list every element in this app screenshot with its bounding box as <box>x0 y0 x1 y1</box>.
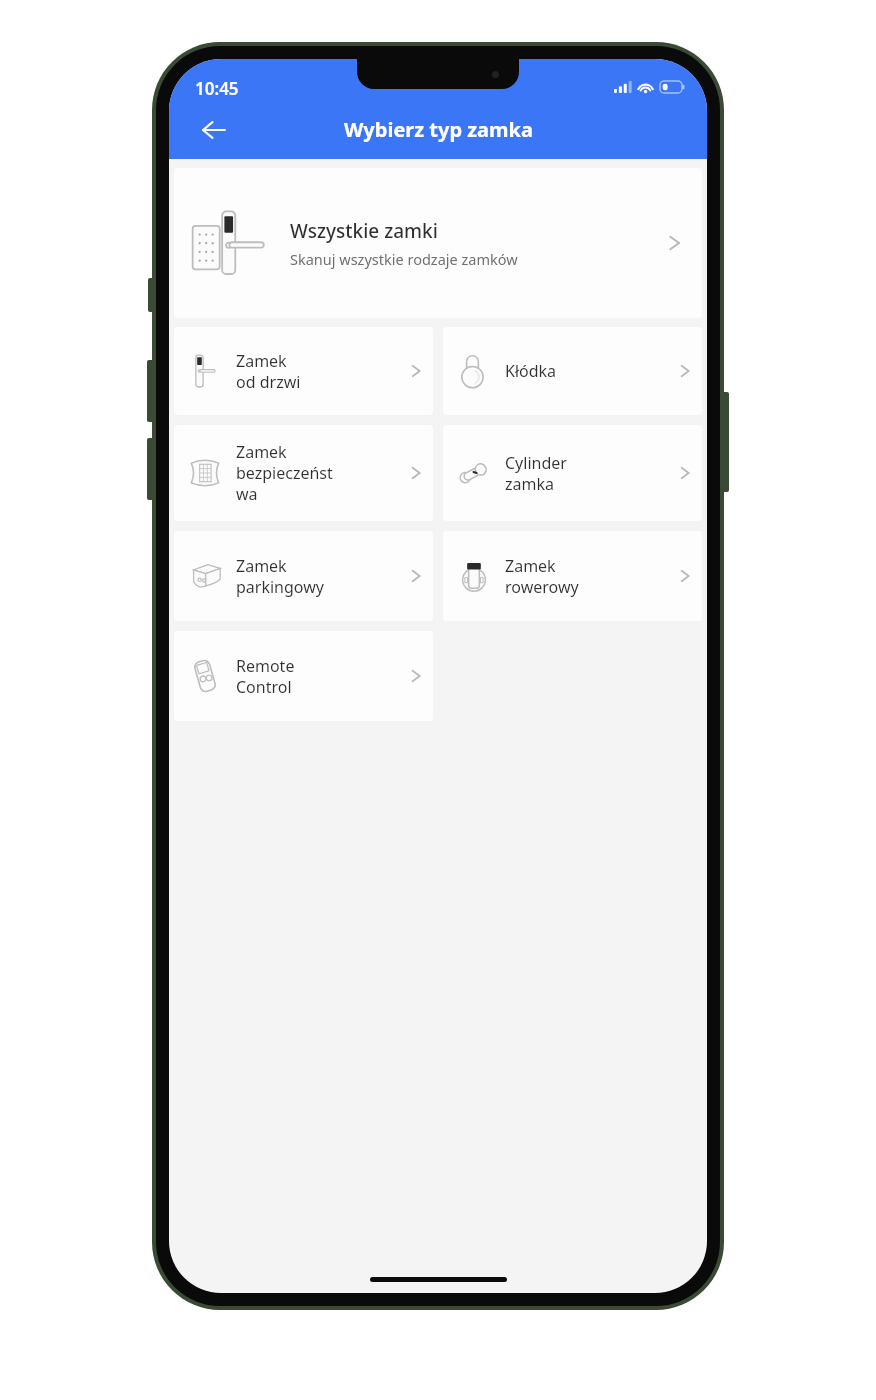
button[interactable]: Wszystkie zamki <box>174 168 702 318</box>
staticText: Zamek rowerowy <box>505 555 666 598</box>
button[interactable]: Back <box>191 107 237 153</box>
staticText: Kłódka <box>505 360 666 382</box>
button[interactable]: Remote Control <box>174 631 433 721</box>
staticText: Wszystkie zamki <box>290 218 438 244</box>
button[interactable]: Zamek bezpieczeńst wa <box>174 425 433 521</box>
staticText: 10:45 <box>195 77 239 100</box>
button[interactable]: Kłódka <box>443 327 702 415</box>
staticText: Cylinder zamka <box>505 452 666 495</box>
button[interactable]: Zamek rowerowy <box>443 531 702 621</box>
staticText: Skanuj wszystkie rodzaje zamków <box>290 249 518 269</box>
staticText: Zamek parkingowy <box>236 555 397 598</box>
staticText: Zamek od drzwi <box>236 350 397 393</box>
staticText: Remote Control <box>236 655 397 698</box>
staticText: Wybierz typ zamka <box>344 116 533 143</box>
staticText: Zamek bezpieczeńst wa <box>236 441 397 505</box>
button[interactable]: Zamek parkingowy <box>174 531 433 621</box>
button[interactable]: Zamek od drzwi <box>174 327 433 415</box>
button[interactable]: Cylinder zamka <box>443 425 702 521</box>
